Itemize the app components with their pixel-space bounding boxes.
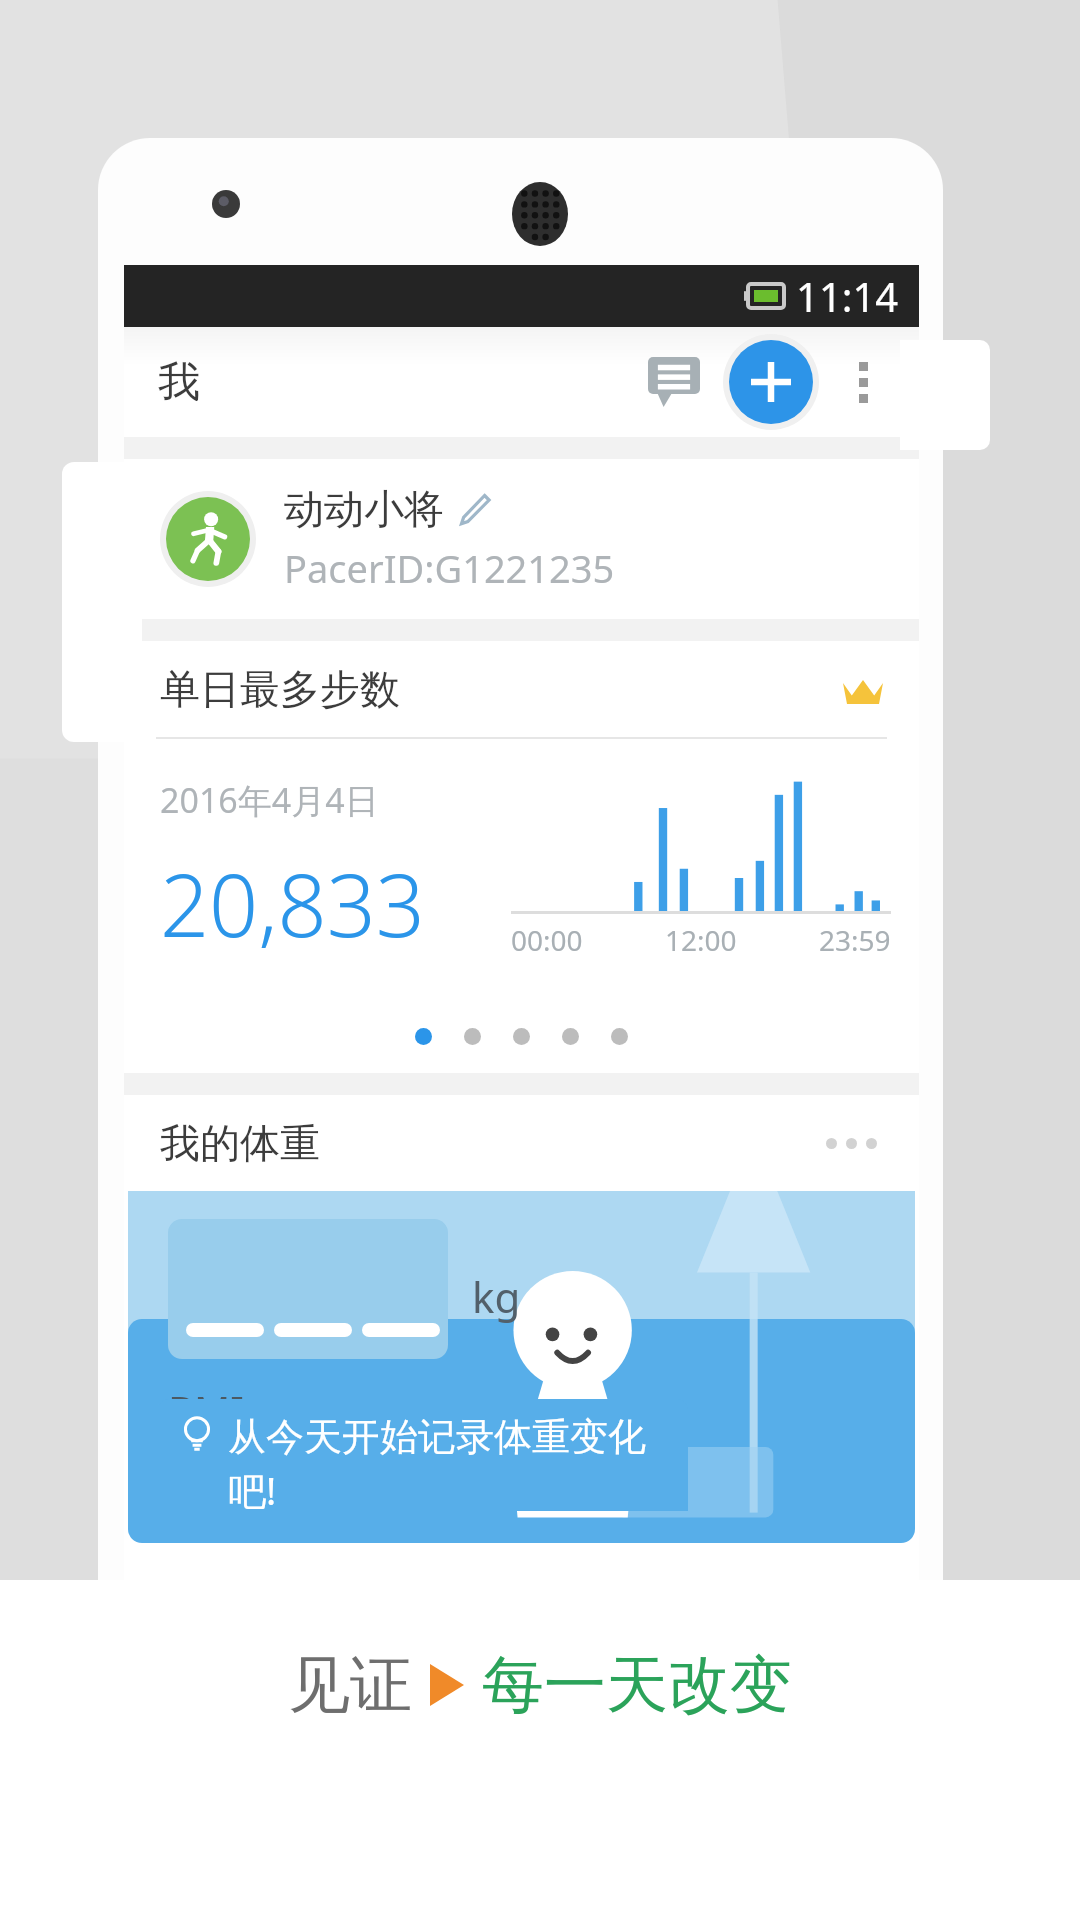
staticText: 每一天改变 bbox=[482, 1646, 792, 1724]
staticText: 见证 bbox=[288, 1646, 412, 1724]
staticText: 2016年4月4日 bbox=[160, 777, 379, 823]
staticText: 我的体重 bbox=[160, 1118, 320, 1168]
staticText: kg bbox=[472, 1268, 521, 1325]
staticText: 20,833 bbox=[160, 845, 425, 962]
staticText: 00:00 bbox=[511, 921, 583, 959]
staticText: 从今天开始记录体重变化吧! bbox=[228, 1413, 688, 1511]
button[interactable]: More options bbox=[827, 346, 899, 418]
button[interactable]: kg bbox=[128, 1191, 915, 1511]
staticText: 23:59 bbox=[819, 921, 891, 959]
button[interactable]: 单日最多步数 bbox=[124, 641, 919, 737]
other: Edit name bbox=[460, 494, 490, 524]
staticText: 我 bbox=[158, 356, 200, 409]
button[interactable]: 动动小将 bbox=[124, 459, 919, 619]
staticText: 单日最多步数 bbox=[160, 664, 400, 714]
staticText: 动动小将 bbox=[284, 484, 444, 534]
button[interactable]: Messages bbox=[635, 343, 713, 421]
button[interactable]: Weight options bbox=[820, 1132, 883, 1155]
button[interactable]: Add bbox=[729, 340, 813, 424]
staticText: BMI -- bbox=[168, 1383, 280, 1437]
staticText: 11:14 bbox=[796, 269, 899, 323]
staticText: 12:00 bbox=[665, 921, 737, 959]
staticText: PacerID:G1221235 bbox=[284, 542, 615, 594]
button[interactable]: 我的体重 bbox=[124, 1095, 919, 1191]
